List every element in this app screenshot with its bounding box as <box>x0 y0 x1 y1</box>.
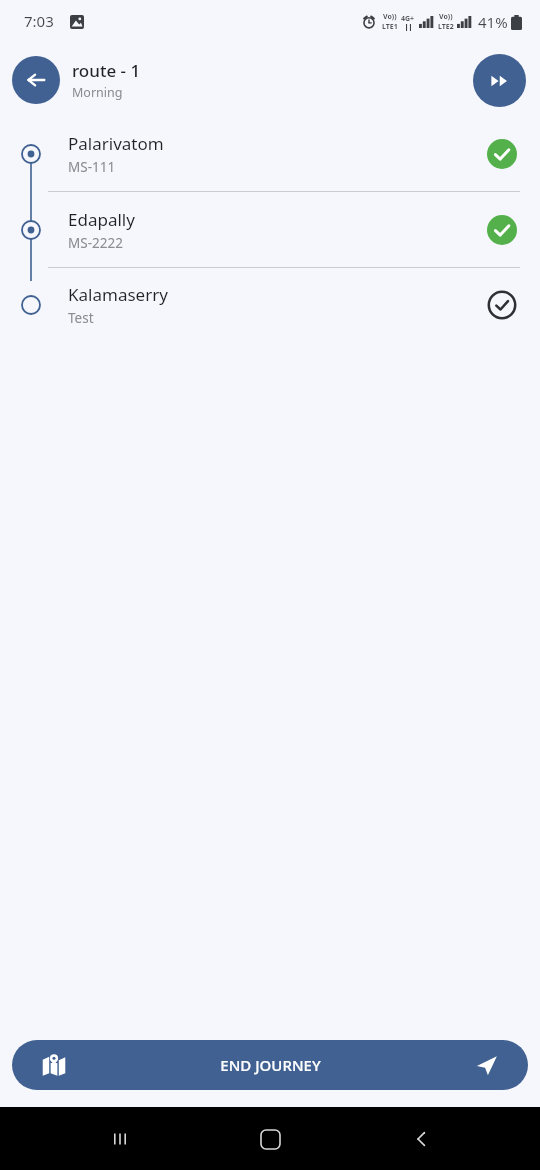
staticText: 41% <box>478 12 508 32</box>
button[interactable]: Mark complete <box>486 289 518 321</box>
button[interactable]: Back <box>12 56 60 104</box>
staticText: Vo)) <box>383 12 397 22</box>
staticText: MS-2222 <box>68 234 123 252</box>
staticText: Vo)) <box>439 12 453 22</box>
staticText: 4G+ <box>401 14 415 24</box>
staticText: END JOURNEY <box>220 1055 321 1075</box>
button[interactable]: Edapally <box>0 192 540 267</box>
staticText: Edapally <box>68 208 135 231</box>
button[interactable]: END JOURNEY <box>12 1040 528 1090</box>
staticText: MS-111 <box>68 158 116 176</box>
staticText: Kalamaserry <box>68 283 168 306</box>
button[interactable]: Palarivatom <box>0 116 540 191</box>
staticText: route - 1 <box>72 59 141 82</box>
staticText: LTE2 <box>438 22 454 32</box>
button[interactable]: Completed <box>486 138 518 170</box>
button[interactable]: Home <box>248 1117 292 1161</box>
button[interactable]: Next stop <box>473 54 526 107</box>
staticText: Morning <box>72 84 123 101</box>
button[interactable]: Back <box>400 1117 444 1161</box>
button[interactable]: Completed <box>486 214 518 246</box>
button[interactable]: Kalamaserry <box>0 268 540 342</box>
staticText: LTE1 <box>382 22 398 32</box>
button[interactable]: Recent apps <box>98 1117 142 1161</box>
other: Map <box>42 1053 66 1077</box>
staticText: 7:03 <box>24 11 54 31</box>
staticText: Test <box>68 309 94 327</box>
staticText: Palarivatom <box>68 132 164 155</box>
other: Navigate <box>475 1054 498 1077</box>
